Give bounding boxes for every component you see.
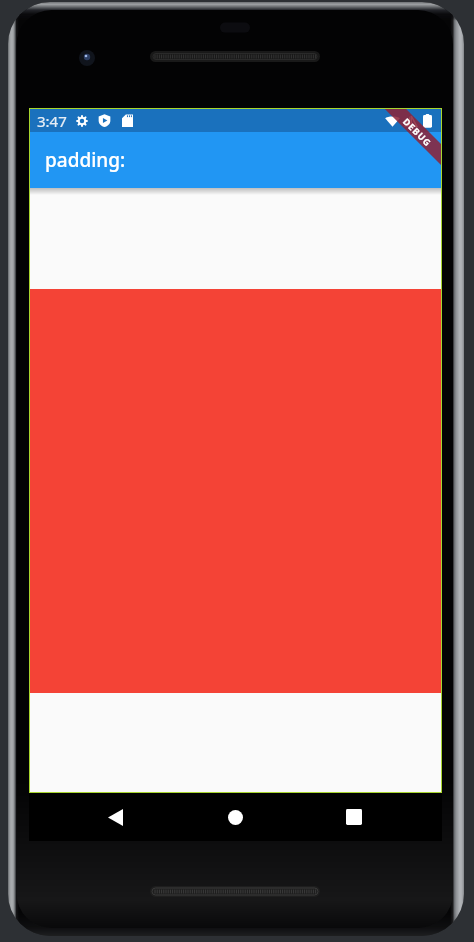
button[interactable]: Back <box>91 793 139 841</box>
staticText: 3:47 <box>37 111 67 131</box>
button[interactable]: Recent apps <box>330 793 378 841</box>
button[interactable]: Home <box>211 793 259 841</box>
button[interactable]: padding: <box>30 132 441 188</box>
staticText: DEBUG <box>401 115 435 149</box>
staticText: padding: <box>45 147 126 173</box>
